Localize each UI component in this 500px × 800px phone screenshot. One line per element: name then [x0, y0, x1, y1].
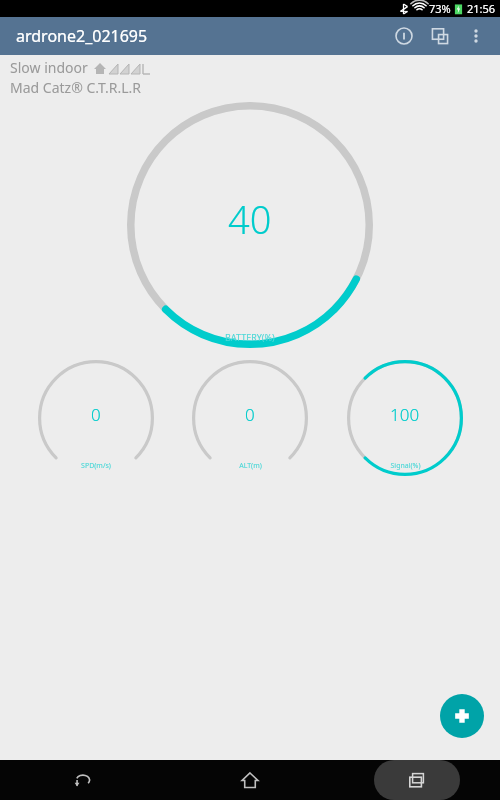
- staticText: ardrone2_021695: [16, 25, 148, 47]
- staticText: Signal(%): [390, 461, 421, 471]
- button[interactable]: Info: [386, 18, 422, 54]
- button[interactable]: More options: [458, 18, 494, 54]
- button[interactable]: Recent apps: [333, 760, 500, 800]
- staticText: ALT(m): [239, 461, 262, 471]
- staticText: 0: [91, 403, 101, 426]
- staticText: BATTERY(%): [225, 331, 275, 343]
- staticText: 21:56: [467, 1, 496, 16]
- button[interactable]: Back: [0, 760, 166, 800]
- staticText: SPD(m/s): [81, 461, 111, 471]
- button[interactable]: Settings: [422, 18, 458, 54]
- staticText: 0: [245, 403, 255, 426]
- button[interactable]: Home: [166, 760, 333, 800]
- staticText: Slow indoor: [10, 58, 88, 77]
- staticText: Mad Catz® C.T.R.L.R: [10, 78, 141, 97]
- button[interactable]: Add: [440, 694, 484, 738]
- staticText: 100: [390, 403, 420, 426]
- staticText: 73%: [429, 1, 451, 16]
- staticText: 40: [228, 193, 272, 245]
